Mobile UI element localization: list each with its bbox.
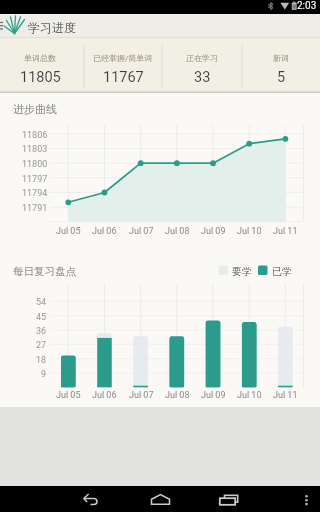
staticText: Jul 07 <box>129 390 154 401</box>
staticText: 27 <box>36 340 47 351</box>
staticText: 2:03 <box>297 0 317 12</box>
staticText: 正在学习 <box>186 53 218 63</box>
button[interactable] <box>72 488 112 512</box>
staticText: Jul 05 <box>56 390 81 401</box>
staticText: 11797 <box>22 174 48 185</box>
staticText: 18 <box>36 355 47 366</box>
staticText: 已经掌握/简单词 <box>93 53 153 63</box>
staticText: Jul 05 <box>56 226 81 237</box>
staticText: Jul 09 <box>201 226 226 237</box>
staticText: Jul 10 <box>237 226 262 237</box>
button[interactable] <box>290 486 314 512</box>
staticText: 45 <box>36 312 47 323</box>
staticText: 新词 <box>273 53 289 63</box>
staticText: 9 <box>41 369 47 380</box>
staticText: 5 <box>277 69 286 86</box>
staticText: Jul 10 <box>237 390 262 401</box>
staticText: Jul 11 <box>273 226 298 237</box>
staticText: 单词总数 <box>24 53 56 63</box>
staticText: 进步曲线 <box>13 102 57 116</box>
staticText: 11800 <box>22 159 48 170</box>
staticText: Jul 06 <box>92 390 117 401</box>
staticText: 学习进度 <box>28 20 76 35</box>
staticText: 54 <box>36 297 47 308</box>
staticText: 要学 <box>232 265 252 278</box>
staticText: 11767 <box>103 69 144 86</box>
staticText: Jul 08 <box>165 390 190 401</box>
staticText: 11803 <box>22 144 48 155</box>
staticText: 11805 <box>20 69 61 86</box>
staticText: 36 <box>36 326 47 337</box>
staticText: 11791 <box>22 203 48 214</box>
staticText: Jul 08 <box>165 226 190 237</box>
staticText: Jul 09 <box>201 390 226 401</box>
staticText: 已学 <box>272 265 292 278</box>
button[interactable] <box>212 488 252 512</box>
button[interactable] <box>4 15 114 37</box>
staticText: 11794 <box>22 188 48 199</box>
staticText: 每日复习盘点 <box>13 265 76 278</box>
staticText: Jul 11 <box>273 390 298 401</box>
staticText: Jul 07 <box>129 226 154 237</box>
staticText: 11806 <box>22 130 48 141</box>
staticText: 33 <box>194 69 211 86</box>
staticText: Jul 06 <box>92 226 117 237</box>
button[interactable] <box>142 488 182 512</box>
